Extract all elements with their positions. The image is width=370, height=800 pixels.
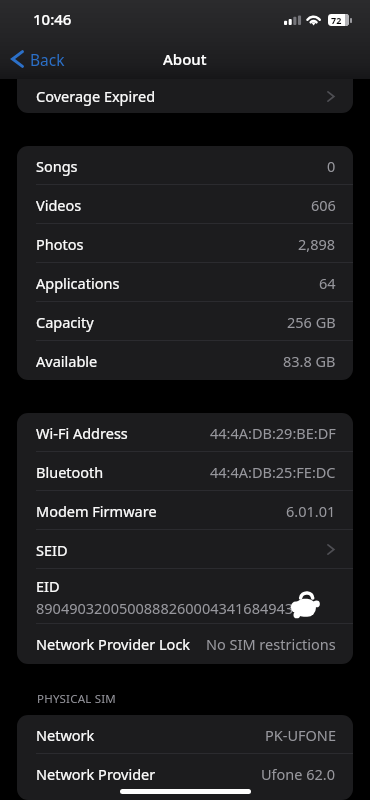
button[interactable]: Photos <box>17 224 353 263</box>
staticText: 2,898 <box>298 234 336 254</box>
staticText: 256 GB <box>287 312 336 332</box>
staticText: 44:4A:DB:29:BE:DF <box>210 423 336 443</box>
button[interactable]: Coverage Expired <box>17 79 353 113</box>
button[interactable]: EID <box>17 569 353 624</box>
button[interactable]: Network <box>17 715 353 754</box>
staticText: 10:46 <box>33 9 72 29</box>
staticText: 83.8 GB <box>283 351 336 371</box>
staticText: EID <box>36 576 60 596</box>
button[interactable]: Available <box>17 341 353 380</box>
staticText: PHYSICAL SIM <box>37 691 116 707</box>
staticText: Network Provider Lock <box>36 634 191 654</box>
button[interactable]: Videos <box>17 185 353 224</box>
button[interactable]: SEID <box>17 530 353 569</box>
staticText: Videos <box>36 195 82 215</box>
staticText: 89049032005008882600043416849439 <box>36 598 302 618</box>
staticText: 606 <box>311 195 336 215</box>
button[interactable]: Modem Firmware <box>17 491 353 530</box>
other: Cellular signal <box>284 15 302 25</box>
button[interactable]: Applications <box>17 263 353 302</box>
staticText: Available <box>36 351 98 371</box>
staticText: Back <box>30 49 65 70</box>
staticText: Capacity <box>36 312 94 332</box>
staticText: 0 <box>327 156 336 176</box>
staticText: Applications <box>36 273 120 293</box>
button[interactable]: Bluetooth <box>17 452 353 491</box>
staticText: Ufone 62.0 <box>261 764 336 784</box>
staticText: 64 <box>319 273 336 293</box>
staticText: Wi-Fi Address <box>36 423 128 443</box>
staticText: 72 <box>331 14 342 26</box>
other: Wi-Fi <box>306 13 323 25</box>
staticText: No SIM restrictions <box>206 634 336 654</box>
other: Back <box>10 50 25 68</box>
button[interactable]: Capacity <box>17 302 353 341</box>
other: Copy EID <box>291 590 320 619</box>
button[interactable]: Wi-Fi Address <box>17 413 353 452</box>
staticText: Coverage Expired <box>36 86 156 106</box>
staticText: About <box>163 49 207 69</box>
button[interactable]: Back <box>0 40 73 78</box>
staticText: Photos <box>36 234 84 254</box>
staticText: 6.01.01 <box>286 501 336 521</box>
staticText: SEID <box>36 540 68 560</box>
button[interactable]: Network Provider <box>17 754 353 793</box>
staticText: 44:4A:DB:25:FE:DC <box>210 462 336 482</box>
staticText: Modem Firmware <box>36 501 157 521</box>
staticText: PK-UFONE <box>265 725 336 745</box>
staticText: Network Provider <box>36 764 156 784</box>
staticText: Songs <box>36 156 78 176</box>
button[interactable]: Network Provider Lock <box>17 624 353 664</box>
button[interactable]: Songs <box>17 146 353 185</box>
staticText: Bluetooth <box>36 462 104 482</box>
other: Battery 72 percent <box>328 14 349 26</box>
staticText: Network <box>36 725 95 745</box>
